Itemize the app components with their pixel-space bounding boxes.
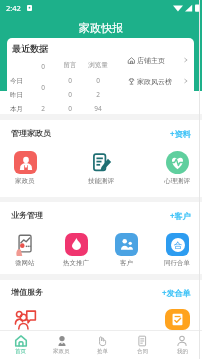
staticText: 店铺主页 — [137, 56, 165, 65]
staticText: 同行合单 — [164, 259, 190, 267]
button[interactable]: 家政员 — [41, 331, 82, 359]
staticText: 2 — [86, 90, 110, 99]
staticText: +发合单 — [162, 287, 191, 298]
staticText: 客户 — [120, 259, 133, 267]
staticText: 家政员 — [15, 177, 35, 185]
staticText: 2 — [36, 104, 50, 113]
staticText: 业务管理 — [11, 210, 43, 220]
staticText: 本月 — [10, 105, 30, 113]
staticText: 管理家政员 — [11, 128, 51, 138]
staticText: 我的 — [177, 348, 188, 355]
staticText: 94 — [86, 104, 110, 113]
staticText: 0 — [36, 83, 50, 92]
staticText: 首页 — [15, 348, 26, 355]
staticText: 技能测评 — [88, 177, 114, 185]
button[interactable]: 店铺主页 — [128, 55, 188, 65]
staticText: 今日 — [10, 77, 30, 85]
staticText: +资料 — [170, 128, 191, 139]
staticText: 合 — [174, 240, 182, 250]
button[interactable]: 我的 — [162, 331, 202, 359]
staticText: 家政员 — [53, 348, 70, 355]
button[interactable]: 首页 — [0, 331, 41, 359]
button[interactable]: 客服咨询 — [12, 309, 38, 330]
staticText: 浏览量 — [86, 61, 110, 69]
staticText: 0 — [62, 104, 78, 113]
staticText: +客户 — [170, 210, 191, 221]
button[interactable]: 客户 — [113, 233, 139, 267]
staticText: 0 — [36, 62, 50, 71]
staticText: 0 — [62, 90, 78, 99]
staticText: 留言 — [62, 61, 78, 69]
staticText: 抢单 — [97, 348, 108, 355]
staticText: 家政快报 — [79, 21, 123, 35]
staticText: 心理测评 — [164, 177, 190, 185]
button[interactable]: 心理测评 — [164, 151, 190, 185]
button[interactable]: +发合单 — [162, 287, 191, 298]
button[interactable]: 家政风云榜 — [128, 76, 188, 86]
staticText: 增值服务 — [11, 287, 43, 297]
button[interactable]: +客户 — [170, 210, 191, 221]
button[interactable]: 发合单 — [164, 309, 190, 330]
staticText: 家政风云榜 — [137, 77, 172, 86]
staticText: 合同 — [137, 348, 148, 355]
staticText: 最近数据 — [12, 43, 48, 54]
staticText: 0 — [62, 76, 78, 85]
staticText: 昨日 — [10, 91, 30, 99]
button[interactable]: 技能测评 — [88, 151, 114, 185]
button[interactable]: 家政员 — [12, 151, 38, 185]
staticText: 2:42 — [6, 3, 21, 13]
button[interactable]: 合同 — [122, 331, 162, 359]
staticText: 微网站 — [15, 259, 35, 267]
button[interactable]: 同行合单 — [164, 233, 190, 267]
staticText: 0 — [86, 76, 110, 85]
button[interactable]: 抢单 — [82, 331, 122, 359]
staticText: 热文推广 — [63, 259, 89, 267]
button[interactable]: +资料 — [170, 128, 191, 139]
button[interactable]: 热文推广 — [63, 233, 89, 267]
button[interactable]: 微网站 — [12, 233, 38, 267]
